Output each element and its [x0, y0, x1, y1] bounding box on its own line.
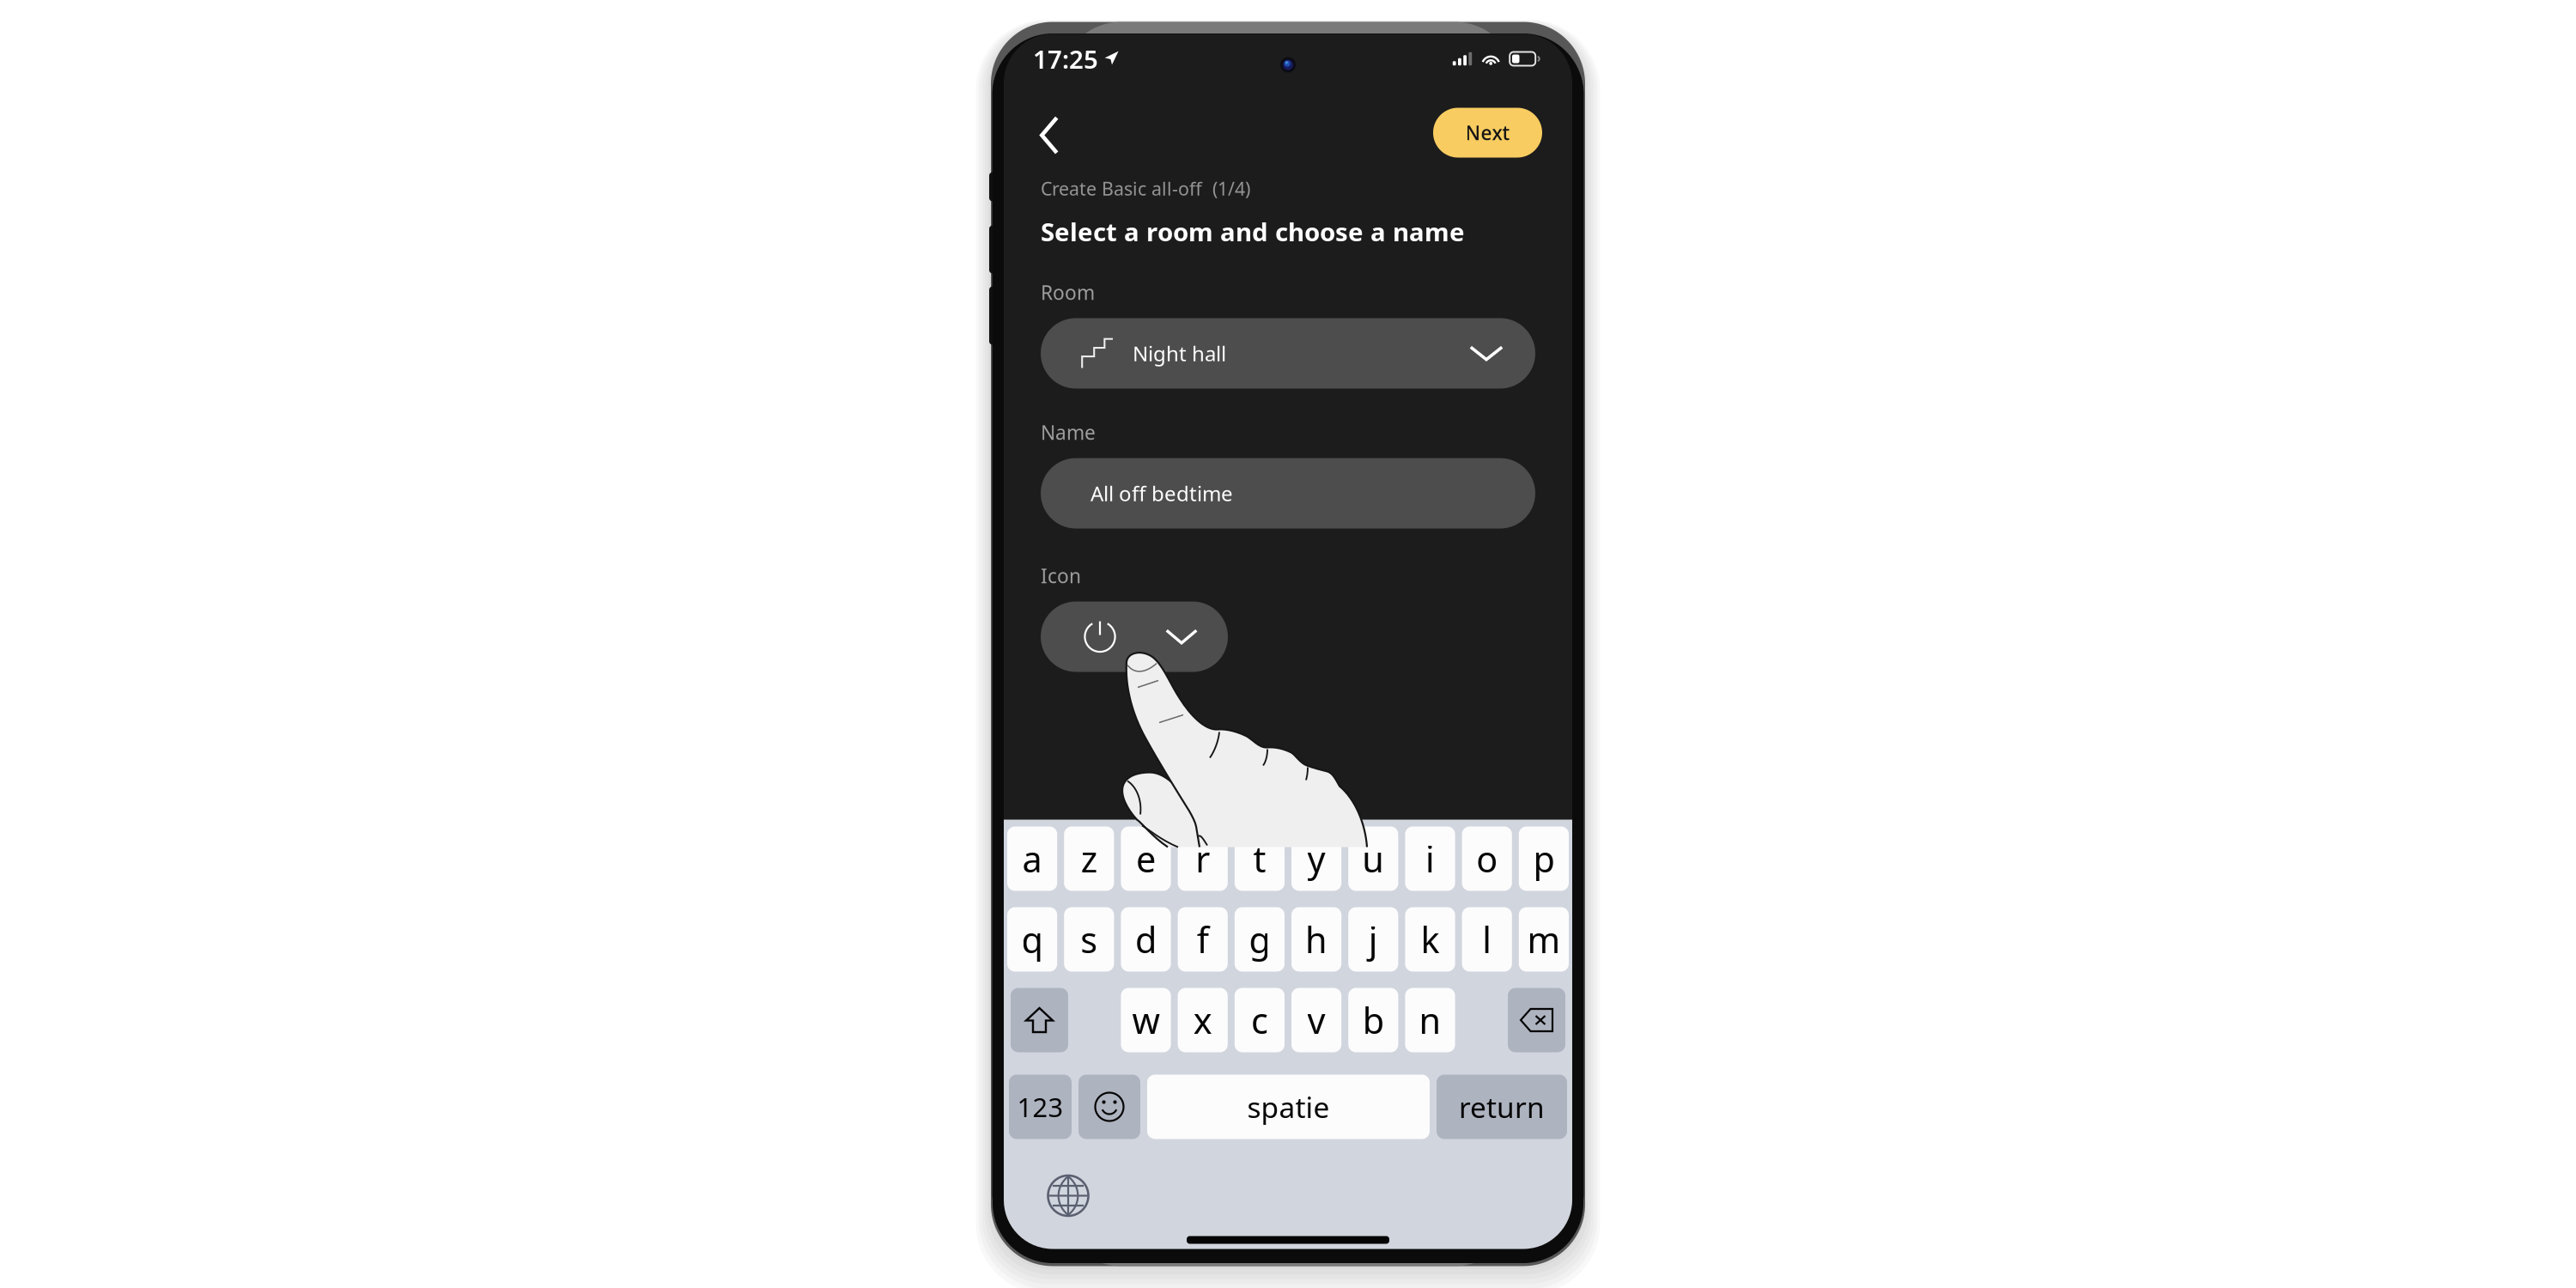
- staticText: e: [1136, 835, 1156, 882]
- button[interactable]: r: [1178, 826, 1228, 891]
- button[interactable]: o: [1462, 826, 1512, 891]
- staticText: 123: [1017, 1089, 1063, 1124]
- staticText: v: [1307, 997, 1325, 1044]
- button[interactable]: spatie: [1147, 1075, 1430, 1139]
- staticText: n: [1419, 997, 1441, 1044]
- staticText: w: [1132, 997, 1160, 1044]
- staticText: y: [1307, 835, 1325, 882]
- button[interactable]: b: [1348, 988, 1398, 1052]
- staticText: s: [1080, 916, 1098, 963]
- button[interactable]: Emoji: [1078, 1075, 1140, 1139]
- staticText: k: [1421, 916, 1440, 963]
- button[interactable]: Backspace: [1508, 988, 1565, 1052]
- button[interactable]: w: [1121, 988, 1171, 1052]
- button[interactable]: d: [1121, 907, 1171, 972]
- button[interactable]: g: [1235, 907, 1285, 972]
- button[interactable]: k: [1405, 907, 1455, 972]
- staticText: Night hall: [1133, 340, 1226, 367]
- staticText: l: [1482, 916, 1492, 963]
- staticText: f: [1197, 916, 1209, 963]
- button[interactable]: q: [1007, 907, 1057, 972]
- staticText: t: [1253, 835, 1266, 882]
- button[interactable]: Next: [1433, 108, 1542, 158]
- staticText: d: [1135, 916, 1157, 963]
- button[interactable]: Choose icon: [1041, 601, 1228, 672]
- button[interactable]: 123: [1009, 1075, 1072, 1139]
- button[interactable]: x: [1178, 988, 1228, 1052]
- button[interactable]: h: [1291, 907, 1341, 972]
- staticText: Room: [1041, 279, 1095, 305]
- staticText: o: [1476, 835, 1498, 882]
- staticText: p: [1533, 835, 1555, 882]
- staticText: 17:25: [1033, 42, 1098, 76]
- button[interactable]: Switch keyboard: [1043, 1171, 1093, 1221]
- button[interactable]: p: [1519, 826, 1569, 891]
- staticText: i: [1425, 835, 1435, 882]
- staticText: All off bedtime: [1091, 480, 1233, 507]
- staticText: g: [1249, 916, 1270, 963]
- staticText: c: [1251, 997, 1268, 1044]
- button[interactable]: t: [1235, 826, 1285, 891]
- button[interactable]: l: [1462, 907, 1512, 972]
- staticText: a: [1022, 835, 1042, 882]
- button[interactable]: a: [1007, 826, 1057, 891]
- staticText: Select a room and choose a name: [1041, 215, 1465, 248]
- staticText: spatie: [1247, 1088, 1330, 1126]
- button[interactable]: s: [1064, 907, 1114, 972]
- staticText: r: [1195, 835, 1210, 882]
- button[interactable]: e: [1121, 826, 1171, 891]
- staticText: Icon: [1041, 563, 1081, 589]
- button[interactable]: u: [1348, 826, 1398, 891]
- button[interactable]: c: [1235, 988, 1285, 1052]
- staticText: q: [1021, 916, 1043, 963]
- staticText: j: [1369, 916, 1378, 963]
- button[interactable]: n: [1405, 988, 1455, 1052]
- staticText: x: [1193, 997, 1212, 1044]
- button[interactable]: y: [1291, 826, 1341, 891]
- button[interactable]: All off bedtime: [1041, 458, 1535, 529]
- button[interactable]: Shift: [1011, 988, 1068, 1052]
- staticText: Next: [1465, 120, 1510, 146]
- button[interactable]: v: [1291, 988, 1341, 1052]
- button[interactable]: z: [1064, 826, 1114, 891]
- staticText: b: [1363, 997, 1384, 1044]
- button[interactable]: f: [1178, 907, 1228, 972]
- staticText: return: [1459, 1088, 1545, 1126]
- staticText: Name: [1041, 419, 1096, 445]
- button[interactable]: Back: [1024, 108, 1074, 163]
- staticText: h: [1305, 916, 1328, 963]
- button[interactable]: i: [1405, 826, 1455, 891]
- button[interactable]: return: [1437, 1075, 1567, 1139]
- staticText: Create Basic all-off (1/4): [1041, 176, 1250, 201]
- staticText: u: [1362, 835, 1384, 882]
- staticText: z: [1081, 835, 1097, 882]
- button[interactable]: j: [1348, 907, 1398, 972]
- button[interactable]: Night hall: [1041, 318, 1535, 389]
- staticText: m: [1527, 916, 1561, 963]
- button[interactable]: m: [1519, 907, 1569, 972]
